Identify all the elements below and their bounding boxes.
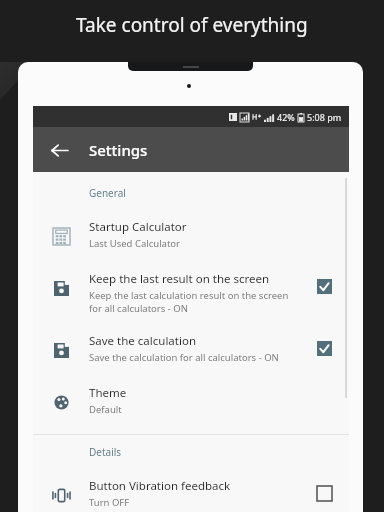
button[interactable]: Keep the last result on the screen bbox=[33, 262, 349, 324]
button[interactable]: Theme bbox=[33, 376, 349, 428]
staticText: General bbox=[89, 186, 126, 200]
button[interactable]: Unchecked bbox=[311, 480, 337, 506]
staticText: Startup Calculator bbox=[89, 219, 187, 235]
staticText: Keep the last result on the screen bbox=[89, 271, 270, 287]
button[interactable]: Startup Calculator bbox=[33, 210, 349, 262]
staticText: Save the calculation for all calculators… bbox=[89, 351, 279, 364]
staticText: Turn OFF bbox=[89, 496, 130, 509]
button[interactable]: Button Vibration feedback bbox=[33, 469, 349, 512]
button[interactable]: Save the calculation bbox=[33, 324, 349, 376]
staticText: Details bbox=[89, 445, 122, 459]
staticText: Default bbox=[89, 403, 122, 416]
staticText: Theme bbox=[89, 385, 127, 401]
staticText: 42% bbox=[277, 111, 295, 123]
staticText: 5:08 pm bbox=[307, 111, 342, 123]
staticText: Button Vibration feedback bbox=[89, 478, 231, 494]
staticText: Save the calculation bbox=[89, 333, 196, 349]
staticText: Settings bbox=[89, 140, 148, 160]
button[interactable]: Checked bbox=[311, 273, 337, 299]
button[interactable]: Checked bbox=[311, 335, 337, 361]
staticText: Keep the last calculation result on the … bbox=[89, 289, 303, 315]
staticText: Take control of everything bbox=[76, 12, 308, 38]
button[interactable]: Back bbox=[41, 132, 77, 168]
staticText: Last Used Calculator bbox=[89, 237, 181, 250]
